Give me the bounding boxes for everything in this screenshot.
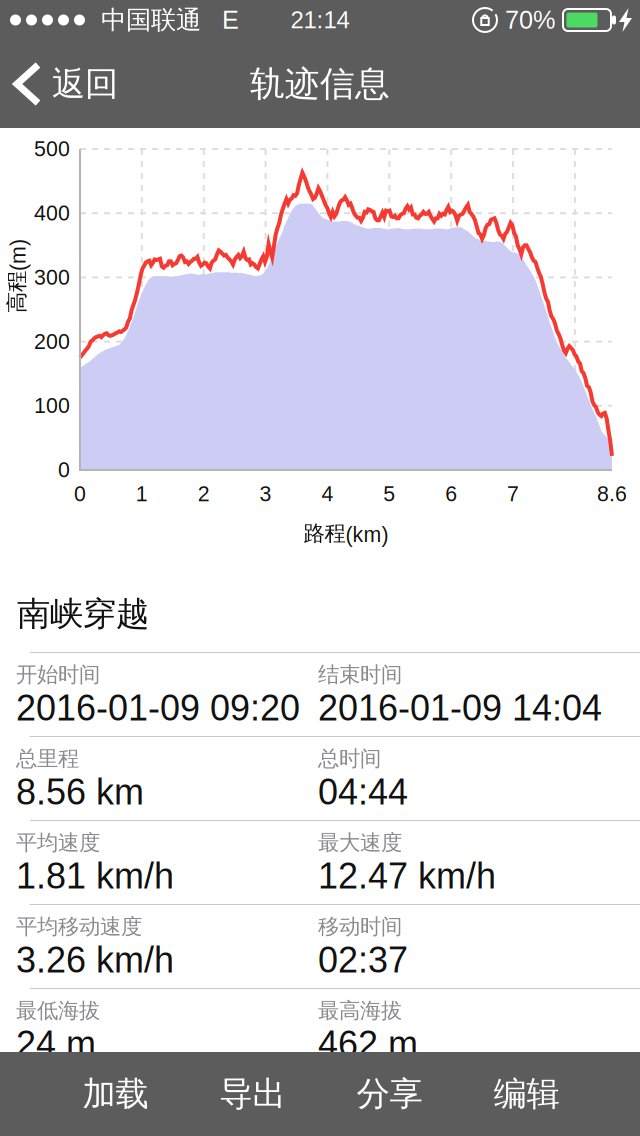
staticText: 开始时间: [16, 661, 100, 688]
staticText: 24 m: [16, 1024, 96, 1064]
staticText: 平均移动速度: [16, 913, 142, 940]
staticText: 结束时间: [318, 661, 402, 688]
staticText: 2: [198, 482, 210, 506]
staticText: 8.56 km: [16, 772, 144, 812]
staticText: 0: [58, 458, 70, 482]
button[interactable]: 分享: [321, 1052, 458, 1136]
staticText: 5: [383, 482, 395, 506]
staticText: 高程(m): [0, 263, 54, 289]
staticText: 轨迹信息: [250, 62, 390, 106]
staticText: 12.47 km/h: [318, 856, 496, 896]
staticText: 导出: [219, 1073, 285, 1115]
staticText: 100: [34, 394, 70, 418]
staticText: 200: [34, 330, 70, 353]
staticText: 21:14: [290, 7, 349, 33]
staticText: 1.81 km/h: [16, 856, 174, 896]
staticText: 最高海拔: [318, 997, 402, 1024]
staticText: 0: [74, 482, 86, 506]
button[interactable]: 加载: [47, 1052, 184, 1136]
staticText: 400: [34, 201, 70, 225]
staticText: 最大速度: [318, 829, 402, 856]
staticText: E: [201, 6, 239, 34]
staticText: 中国联通: [85, 4, 201, 36]
staticText: 7: [507, 482, 519, 506]
staticText: 1: [136, 482, 148, 506]
staticText: 总时间: [318, 745, 381, 772]
staticText: 462 m: [318, 1024, 418, 1064]
staticText: 3: [260, 482, 272, 506]
staticText: 南峡穿越: [17, 593, 149, 635]
staticText: 300: [34, 265, 70, 289]
button[interactable]: 导出: [184, 1052, 321, 1136]
staticText: 04:44: [318, 772, 408, 812]
staticText: 移动时间: [318, 913, 402, 940]
staticText: 加载: [82, 1073, 148, 1115]
staticText: 8.6: [597, 482, 627, 506]
staticText: 路程(km): [303, 520, 388, 547]
button[interactable]: 编辑: [458, 1052, 595, 1136]
staticText: 500: [34, 137, 70, 161]
staticText: 最低海拔: [16, 997, 100, 1024]
staticText: 平均速度: [16, 829, 100, 856]
staticText: 4: [321, 482, 333, 506]
staticText: 2016-01-09 14:04: [318, 688, 602, 728]
staticText: 编辑: [493, 1073, 559, 1115]
staticText: 6: [445, 482, 457, 506]
staticText: 2016-01-09 09:20: [16, 688, 300, 728]
staticText: 分享: [356, 1073, 422, 1115]
staticText: 70%: [498, 6, 563, 34]
staticText: 02:37: [318, 940, 408, 980]
staticText: 返回: [52, 63, 118, 105]
button[interactable]: 返回: [0, 40, 130, 128]
staticText: 总里程: [16, 745, 79, 772]
staticText: 3.26 km/h: [16, 940, 174, 980]
